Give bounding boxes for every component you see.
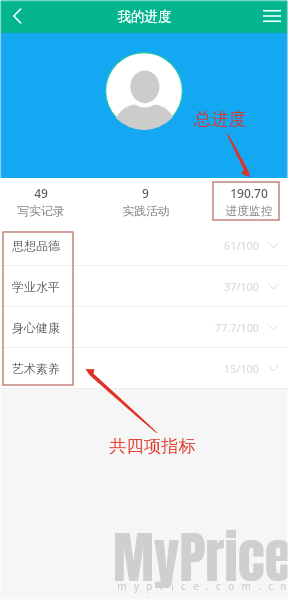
staticText: 实践活动 xyxy=(122,204,170,219)
staticText: 学业水平 xyxy=(12,279,60,294)
staticText: 进度监控 xyxy=(225,204,273,219)
button[interactable]: 思想品德 xyxy=(0,225,288,265)
staticText: 共四项指标 xyxy=(109,435,196,457)
staticText: 61/100 xyxy=(224,238,259,253)
staticText: 思想品德 xyxy=(12,238,60,253)
button[interactable]: 49 xyxy=(0,178,82,225)
button[interactable]: Menu xyxy=(255,0,288,32)
staticText: 艺术素养 xyxy=(12,361,60,376)
button[interactable]: 190.70 xyxy=(209,178,288,225)
staticText: myprice.com.cn xyxy=(117,579,288,593)
staticText: 190.70 xyxy=(230,185,268,201)
staticText: 49 xyxy=(34,185,48,201)
button[interactable]: 9 xyxy=(82,178,209,225)
staticText: MyPrice xyxy=(113,516,288,599)
button[interactable]: 艺术素养 xyxy=(0,348,288,388)
staticText: 我的进度 xyxy=(117,8,172,25)
staticText: 9 xyxy=(142,185,149,201)
button[interactable]: 学业水平 xyxy=(0,266,288,306)
staticText: 身心健康 xyxy=(12,320,60,335)
staticText: 77.7/100 xyxy=(215,320,259,335)
staticText: 15/100 xyxy=(224,361,259,376)
staticText: 写实记录 xyxy=(17,204,65,219)
staticText: 37/100 xyxy=(224,279,259,294)
button[interactable]: 身心健康 xyxy=(0,307,288,347)
staticText: 总进度 xyxy=(194,108,246,130)
button[interactable]: Back xyxy=(0,0,34,32)
